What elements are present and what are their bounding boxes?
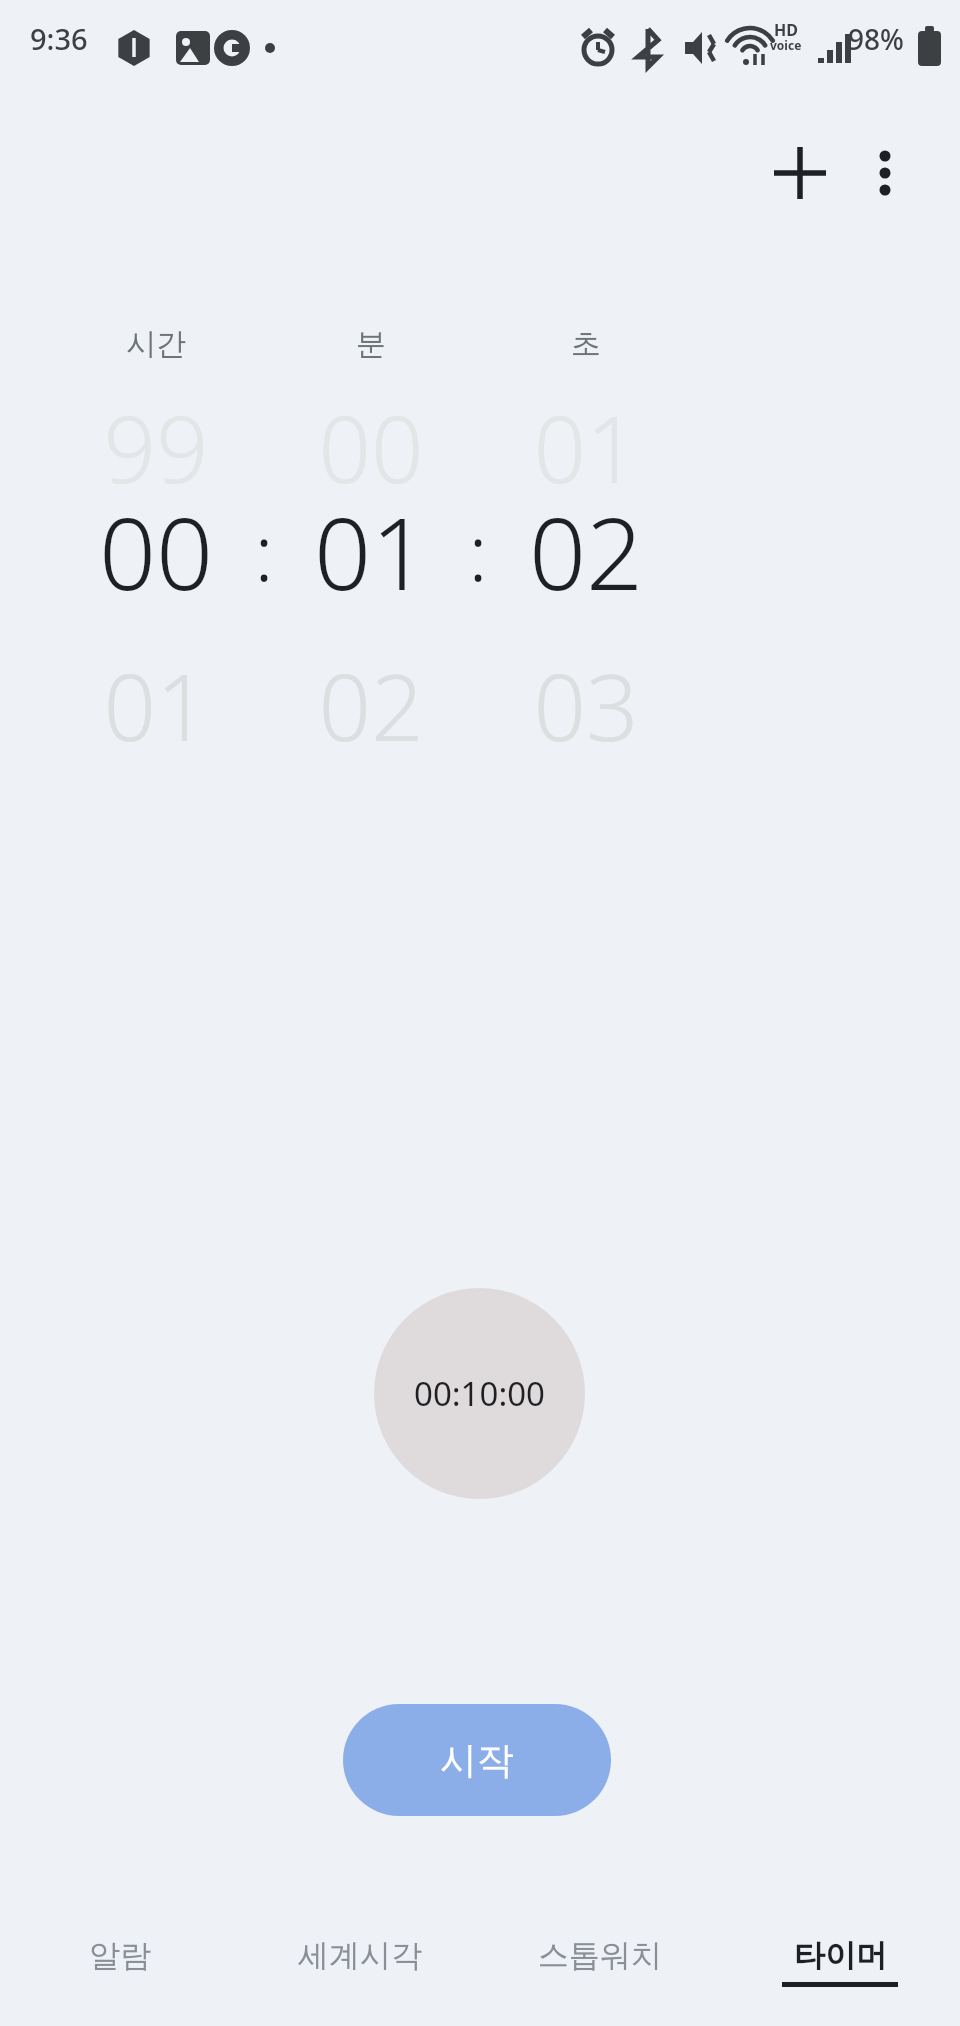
button[interactable]: 00 xyxy=(46,478,266,623)
staticText: voice xyxy=(770,37,802,53)
staticText: 01 xyxy=(261,483,481,619)
staticText: 99 xyxy=(16,385,296,510)
staticText: 알람 xyxy=(89,1936,151,1975)
staticText: : xyxy=(438,498,518,604)
staticText: HD xyxy=(774,19,798,41)
staticText: 분 xyxy=(231,325,511,363)
button[interactable]: 타이머 xyxy=(720,1936,960,2026)
button[interactable]: 02 xyxy=(476,478,696,623)
staticText: 01 xyxy=(16,643,296,768)
button[interactable]: 00:10:00 xyxy=(374,1288,585,1499)
staticText: 03 xyxy=(446,643,726,768)
staticText: 스톱워치 xyxy=(538,1936,662,1975)
staticText: 98% xyxy=(848,20,904,58)
staticText: 초 xyxy=(446,325,726,363)
button[interactable]: 시작 xyxy=(343,1704,611,1816)
staticText: 9:36 xyxy=(30,19,88,58)
staticText: 00 xyxy=(46,483,266,619)
button[interactable]: 스톱워치 xyxy=(480,1936,720,2026)
staticText: 시작 xyxy=(440,1737,514,1784)
staticText: : xyxy=(224,498,304,604)
staticText: 시간 xyxy=(16,325,296,363)
button[interactable]: Add preset timer xyxy=(754,127,846,219)
staticText: 타이머 xyxy=(794,1936,887,1975)
staticText: 00:10:00 xyxy=(414,1371,545,1416)
button[interactable]: 01 xyxy=(261,478,481,623)
button[interactable]: 알람 xyxy=(0,1936,240,2026)
staticText: 세계시각 xyxy=(298,1936,422,1975)
button[interactable]: 세계시각 xyxy=(240,1936,480,2026)
staticText: 02 xyxy=(476,483,696,619)
staticText: 02 xyxy=(231,643,511,768)
staticText: 00 xyxy=(231,385,511,510)
button[interactable]: More options xyxy=(839,127,931,219)
